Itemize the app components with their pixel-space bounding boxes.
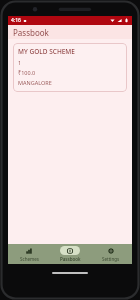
staticText: MY GOLD SCHEME [18,47,75,56]
staticText: Settings [102,256,120,262]
button[interactable]: Passbook [50,244,90,264]
button[interactable]: Schemes [9,244,49,264]
staticText: ₹100.0 [18,69,36,76]
staticText: 4:16 [11,17,21,24]
button[interactable]: MY GOLD SCHEME [13,43,127,92]
staticText: MANGALORE [18,79,52,86]
button[interactable]: Settings [91,244,131,264]
staticText: Passbook [13,27,49,38]
staticText: Passbook [60,256,81,262]
staticText: Schemes [20,256,39,262]
staticText: 1 [18,59,22,66]
